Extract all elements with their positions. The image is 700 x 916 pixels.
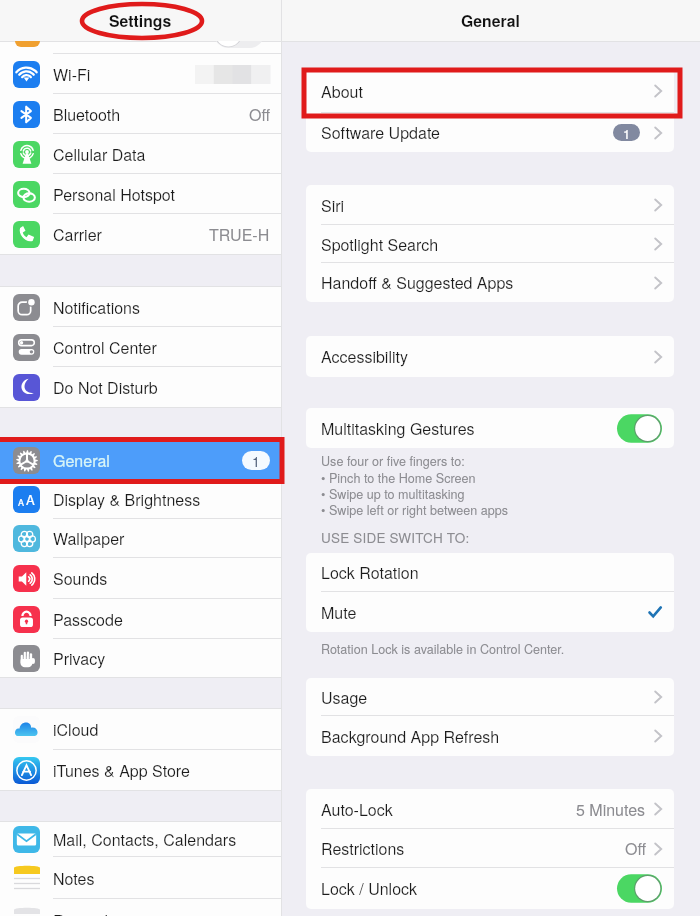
staticText: Bluetooth <box>53 103 249 126</box>
button[interactable]: Privacy <box>0 639 281 677</box>
staticText: Privacy <box>53 647 270 670</box>
staticText: Reminders <box>53 909 270 916</box>
button[interactable]: Lock Rotation <box>306 553 674 592</box>
button[interactable]: Siri <box>306 185 674 225</box>
staticText: Handoff & Suggested Apps <box>321 271 651 294</box>
staticText: Settings <box>109 9 172 32</box>
button[interactable]: Control Center <box>0 327 281 367</box>
button[interactable]: Passcode <box>0 599 281 639</box>
button[interactable]: Handoff & Suggested Apps <box>306 263 674 302</box>
button[interactable]: Sounds <box>0 558 281 599</box>
button[interactable]: Restrictions <box>306 829 674 868</box>
staticText: Passcode <box>53 608 270 631</box>
staticText: Lock / Unlock <box>321 877 617 900</box>
staticText: Notes <box>53 867 270 890</box>
staticText: Restrictions <box>321 837 625 860</box>
staticText: Sounds <box>53 567 270 590</box>
button[interactable]: General <box>0 440 281 480</box>
staticText: A <box>26 490 35 509</box>
staticText: Wi-Fi <box>53 63 195 86</box>
staticText: Display & Brightness <box>53 488 270 511</box>
staticText: Personal Hotspot <box>53 183 270 206</box>
button[interactable]: About <box>306 69 674 113</box>
staticText: About <box>321 80 651 103</box>
button[interactable]: Lock / Unlock <box>306 868 674 909</box>
staticText: 1 <box>623 124 631 141</box>
staticText: USE SIDE SWITCH TO: <box>321 528 470 547</box>
button[interactable]: Cellular Data <box>0 134 281 174</box>
button[interactable]: Accessibility <box>306 336 674 377</box>
button[interactable]: Do Not Disturb <box>0 367 281 407</box>
button[interactable]: Mail, Contacts, Calendars <box>0 822 281 857</box>
staticText: Mute <box>321 601 649 624</box>
button[interactable]: Usage <box>306 678 674 716</box>
staticText: Cellular Data <box>53 143 270 166</box>
staticText: Software Update <box>321 121 613 144</box>
button[interactable]: Wi-Fi <box>0 54 281 94</box>
button[interactable]: Notes <box>0 857 281 899</box>
staticText: Off <box>249 103 270 126</box>
button[interactable]: Multitasking Gestures <box>306 408 674 448</box>
staticText: Auto-Lock <box>321 798 576 821</box>
staticText: Background App Refresh <box>321 725 651 748</box>
staticText: Rotation Lock is available in Control Ce… <box>321 640 565 658</box>
button[interactable]: Mute <box>306 592 674 632</box>
staticText: Accessibility <box>321 345 651 368</box>
button[interactable]: Wallpaper <box>0 519 281 558</box>
staticText: Usage <box>321 686 651 709</box>
button[interactable]: A <box>0 480 281 519</box>
staticText: Control Center <box>53 336 270 359</box>
staticText: iTunes & App Store <box>53 759 270 782</box>
button[interactable]: Carrier <box>0 214 281 254</box>
staticText: Lock Rotation <box>321 561 663 584</box>
button[interactable]: Background App Refresh <box>306 716 674 756</box>
button[interactable]: Software Update <box>306 113 674 152</box>
button[interactable]: Notifications <box>0 287 281 327</box>
staticText: Carrier <box>53 223 209 246</box>
button[interactable]: Personal Hotspot <box>0 174 281 214</box>
staticText: Do Not Disturb <box>53 376 270 399</box>
staticText: Off <box>625 837 646 860</box>
staticText: 5 Minutes <box>576 798 646 821</box>
button[interactable]: Auto-Lock <box>306 789 674 829</box>
staticText: Mail, Contacts, Calendars <box>53 828 270 851</box>
button[interactable]: Spotlight Search <box>306 225 674 263</box>
staticText: Wallpaper <box>53 527 270 550</box>
staticText: Notifications <box>53 296 270 319</box>
staticText: General <box>53 449 242 472</box>
staticText: TRUE-H <box>209 223 270 246</box>
staticText: Spotlight Search <box>321 233 651 256</box>
staticText: Multitasking Gestures <box>321 417 617 440</box>
staticText: iCloud <box>53 718 270 741</box>
staticText: Use four or five fingers to: • Pinch to … <box>321 452 509 518</box>
staticText: General <box>461 9 520 32</box>
staticText: Siri <box>321 194 651 217</box>
button[interactable]: Bluetooth <box>0 94 281 134</box>
button[interactable]: iTunes & App Store <box>0 750 281 790</box>
staticText: A <box>18 496 25 509</box>
staticText: 1 <box>252 451 260 470</box>
button[interactable]: iCloud <box>0 709 281 750</box>
button[interactable]: Reminders <box>0 899 281 916</box>
